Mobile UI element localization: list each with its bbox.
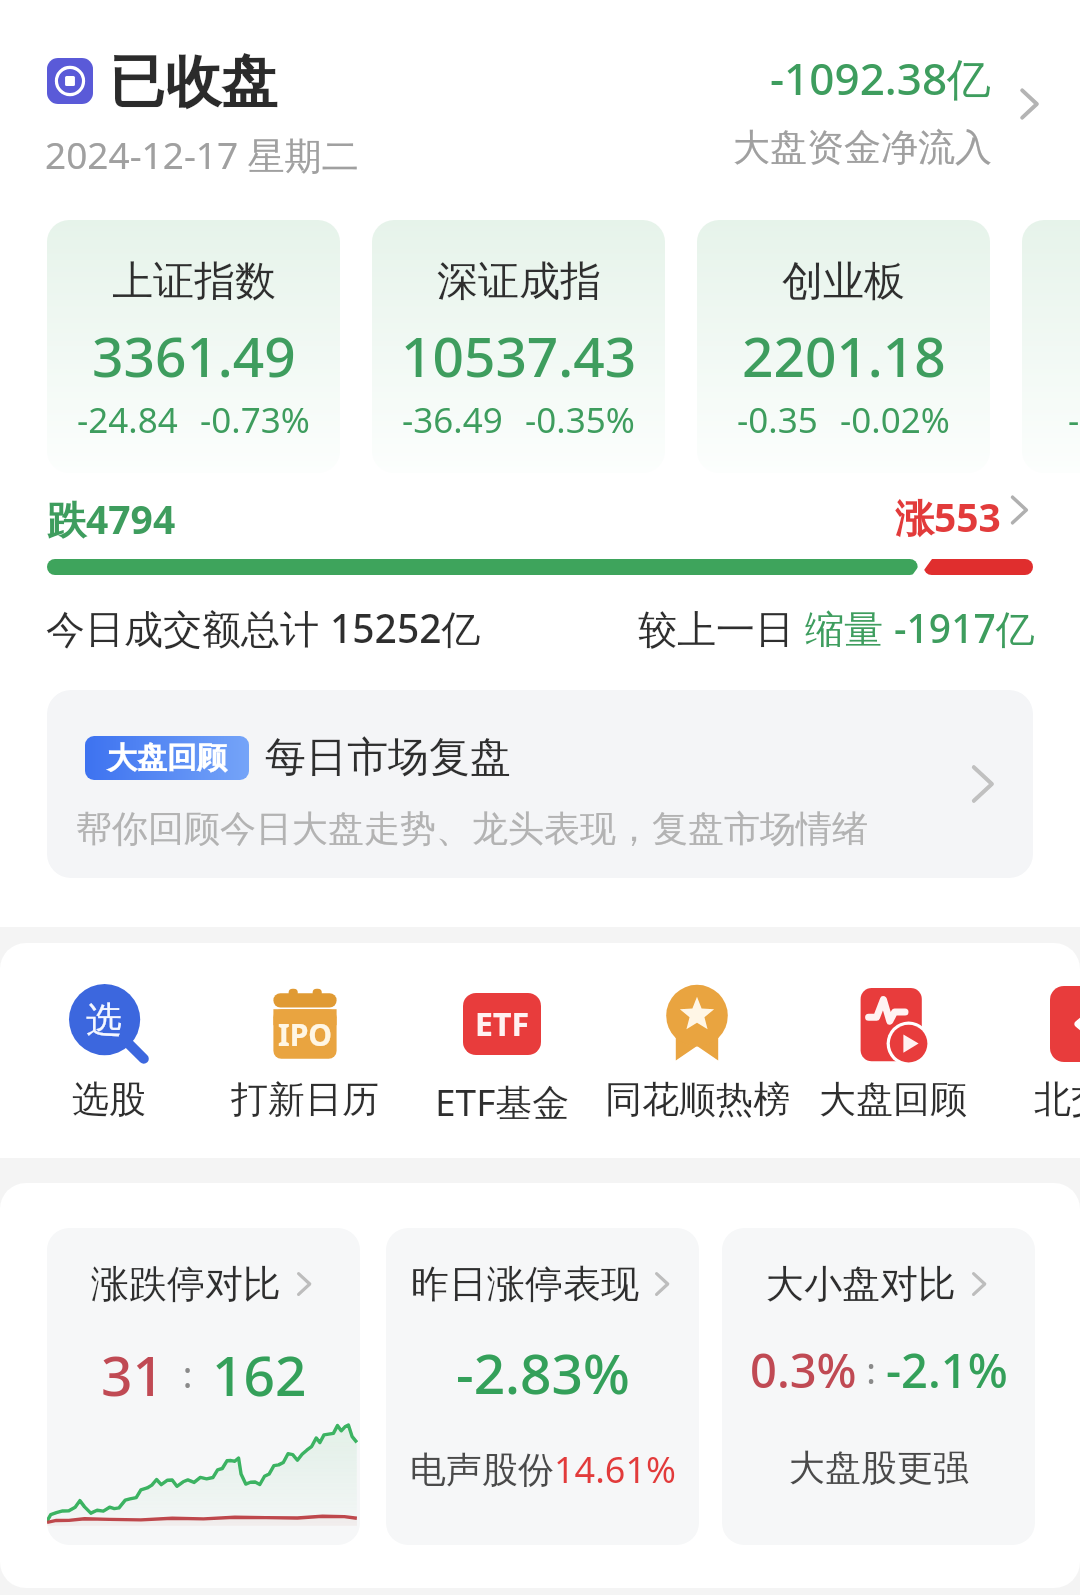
staticText: 大盘回顾 <box>819 1076 967 1123</box>
staticText: -8.5 <box>1068 396 1080 444</box>
staticText: 北交所 <box>1034 1076 1080 1123</box>
staticText: 同花顺热榜 <box>605 1076 790 1123</box>
staticText: -36.49 <box>402 396 503 444</box>
button[interactable]: 科创50 <box>1022 220 1080 473</box>
staticText: 涨553 <box>895 490 1001 543</box>
button[interactable]: 创业板 <box>697 220 990 473</box>
staticText: 昨日涨停表现 <box>411 1260 639 1308</box>
staticText: : <box>857 1346 886 1395</box>
button[interactable]: 涨跌停对比 <box>47 1228 360 1545</box>
staticText: 上证指数 <box>112 256 276 308</box>
staticText: -0.35% <box>525 396 635 444</box>
button[interactable]: 大盘回顾 <box>47 690 1033 878</box>
staticText: ETF基金 <box>435 1076 570 1127</box>
button[interactable]: 选 <box>11 980 207 1125</box>
staticText: 15252亿 <box>330 601 481 654</box>
staticText: 每日市场复盘 <box>265 732 511 784</box>
staticText: 跌4794 <box>47 492 176 545</box>
staticText: 3361.49 <box>92 318 296 393</box>
staticText: 深证成指 <box>437 256 601 308</box>
staticText: 2024-12-17 星期二 <box>45 129 359 180</box>
button[interactable]: 大小盘对比 <box>722 1228 1035 1545</box>
staticText: 大盘回顾 <box>107 739 227 777</box>
staticText: ETF <box>475 1002 529 1046</box>
button[interactable]: 北交所 <box>991 980 1080 1125</box>
staticText: 14.61% <box>554 1445 676 1494</box>
staticText: -1092.38亿 <box>770 48 992 108</box>
staticText: 10537.43 <box>401 318 637 393</box>
staticText: IPO <box>278 1014 333 1055</box>
button[interactable]: 深证成指 <box>372 220 665 473</box>
button[interactable]: 大盘回顾 <box>795 980 991 1125</box>
staticText: 162 <box>212 1337 307 1412</box>
staticText: 打新日历 <box>231 1076 379 1123</box>
button[interactable]: IPO <box>207 980 403 1125</box>
staticText: -0.35 <box>737 396 818 444</box>
button[interactable]: 昨日涨停表现 <box>386 1228 699 1545</box>
staticText: -2.83% <box>456 1335 630 1410</box>
staticText: 选股 <box>72 1076 146 1123</box>
button[interactable]: -1092.38亿 <box>700 40 1052 170</box>
staticText: 涨跌停对比 <box>91 1260 281 1308</box>
staticText: 创业板 <box>782 256 905 308</box>
staticText: 选 <box>86 997 122 1042</box>
staticText: 较上一日 <box>638 601 805 654</box>
button[interactable]: 涨跌详情 <box>1001 493 1035 527</box>
staticText: -1917亿 <box>894 601 1035 654</box>
staticText: 大盘资金净流入 <box>733 124 992 171</box>
staticText: 大盘股更强 <box>789 1445 969 1490</box>
staticText: 电声股份 <box>410 1447 554 1492</box>
staticText: 帮你回顾今日大盘走势、龙头表现，复盘市场情绪 <box>76 806 868 851</box>
staticText: -0.02% <box>840 396 950 444</box>
staticText: -24.84 <box>77 396 178 444</box>
staticText: 大小盘对比 <box>766 1260 956 1308</box>
button[interactable]: 同花顺热榜 <box>599 980 795 1125</box>
button[interactable]: ETF <box>404 980 600 1125</box>
staticText: 已收盘 <box>109 47 277 118</box>
staticText: -0.73% <box>200 396 310 444</box>
button[interactable]: 上证指数 <box>47 220 340 473</box>
staticText: 0.3% <box>750 1338 857 1402</box>
staticText: : <box>164 1350 212 1399</box>
staticText: 今日成交额总计 <box>46 601 330 654</box>
staticText: 2201.18 <box>742 318 946 393</box>
staticText: 缩量 <box>805 601 894 654</box>
other: 大盘资金净流入详情 <box>1008 84 1048 124</box>
staticText: 31 <box>101 1337 164 1412</box>
staticText: -2.1% <box>886 1338 1008 1402</box>
